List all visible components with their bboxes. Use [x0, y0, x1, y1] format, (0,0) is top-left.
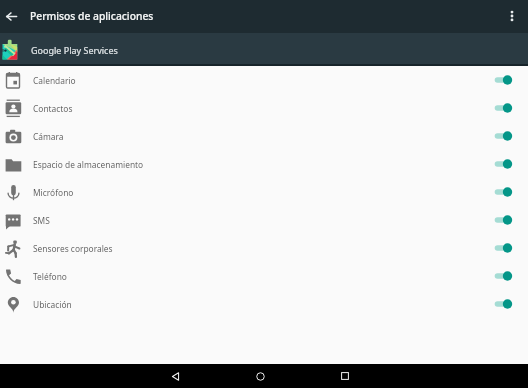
button[interactable]: Teléfono [0, 262, 528, 290]
button[interactable]: SMS [0, 206, 528, 234]
button[interactable]: Google Play Services [0, 33, 528, 66]
button[interactable]: Atrás [163, 364, 187, 388]
button[interactable]: Permiso SMS [494, 207, 528, 233]
staticText: Permisos de aplicaciones [30, 9, 154, 23]
staticText: Cámara [33, 131, 64, 142]
staticText: Contactos [33, 103, 73, 114]
button[interactable]: Espacio de almacenamiento [0, 150, 528, 178]
button[interactable]: Permiso Contactos [494, 95, 528, 121]
staticText: Micrófono [33, 187, 74, 198]
staticText: Ubicación [33, 299, 72, 310]
button[interactable]: Permiso Espacio de almacenamiento [494, 151, 528, 177]
button[interactable]: Ubicación [0, 290, 528, 318]
button[interactable]: Atrás [1, 6, 21, 26]
button[interactable]: Inicio [248, 364, 272, 388]
staticText: Teléfono [33, 271, 67, 282]
button[interactable]: Sensores corporales [0, 234, 528, 262]
staticText: Sensores corporales [33, 243, 113, 254]
button[interactable]: Permiso Sensores corporales [494, 235, 528, 261]
button[interactable]: Cámara [0, 122, 528, 150]
button[interactable]: Aplicaciones recientes [333, 364, 357, 388]
button[interactable]: Calendario [0, 66, 528, 94]
button[interactable]: Permiso Micrófono [494, 179, 528, 205]
button[interactable]: Micrófono [0, 178, 528, 206]
staticText: Espacio de almacenamiento [33, 159, 144, 170]
staticText: Calendario [33, 75, 76, 86]
staticText: SMS [33, 215, 50, 226]
button[interactable]: Contactos [0, 94, 528, 122]
button[interactable]: Permiso Calendario [494, 67, 528, 93]
button[interactable]: Permiso Teléfono [494, 263, 528, 289]
staticText: Google Play Services [31, 44, 118, 56]
button[interactable]: Permiso Ubicación [494, 291, 528, 317]
button[interactable]: Permiso Cámara [494, 123, 528, 149]
button[interactable]: Más opciones [502, 6, 522, 26]
